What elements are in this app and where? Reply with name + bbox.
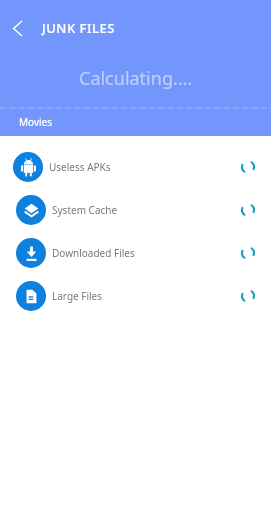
staticText: Movies xyxy=(19,115,53,129)
staticText: Large Files xyxy=(52,289,103,303)
button[interactable]: Downloaded Files xyxy=(0,231,271,274)
staticText: Downloaded Files xyxy=(52,246,135,260)
staticText: JUNK FILES xyxy=(42,19,115,37)
staticText: Useless APKs xyxy=(49,160,111,174)
button[interactable]: Useless APKs xyxy=(0,145,271,188)
button[interactable]: Large Files xyxy=(0,274,271,317)
button[interactable]: System Cache xyxy=(0,188,271,231)
button[interactable]: Back xyxy=(0,11,34,45)
staticText: System Cache xyxy=(52,203,118,217)
staticText: Calculating.... xyxy=(79,66,193,91)
